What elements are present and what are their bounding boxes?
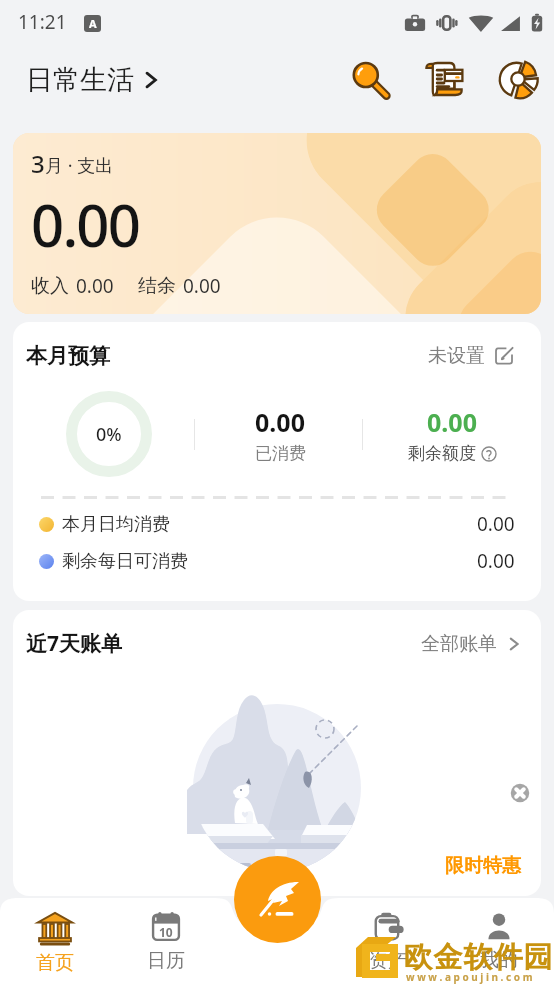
staticText: 未设置 (428, 344, 485, 368)
staticText: 11:21 (18, 9, 67, 35)
button[interactable]: Add record (234, 856, 321, 943)
staticText: 剩余额度 (408, 443, 476, 464)
button[interactable]: 资产 (332, 898, 443, 984)
button[interactable]: 未设置 (428, 344, 514, 368)
staticText: A (89, 16, 97, 31)
button[interactable]: 日常生活 (26, 63, 161, 97)
button[interactable]: Bills (419, 54, 469, 104)
staticText: 日常生活 (26, 63, 134, 97)
staticText: 我的 (480, 948, 518, 972)
staticText: 日历 (147, 949, 185, 973)
button[interactable]: Statistics (493, 54, 543, 104)
staticText: 0.00 (183, 273, 221, 299)
staticText: 0.00 (31, 185, 140, 264)
staticText: 0.00 (477, 548, 515, 574)
staticText: 剩余每日可消费 (62, 550, 188, 573)
staticText: 收入 (31, 274, 69, 298)
button[interactable]: Close (509, 782, 531, 804)
staticText: 近7天账单 (26, 629, 123, 658)
button[interactable]: 我的 (443, 898, 554, 984)
staticText: 欧金软件园 (403, 939, 553, 976)
button[interactable]: 10 (110, 898, 221, 984)
staticText: 0% (96, 422, 122, 447)
staticText: 0.00 (76, 273, 114, 299)
staticText: 0.00 (427, 405, 477, 439)
staticText: 本月日均消费 (62, 513, 170, 536)
staticText: 月 · 支出 (45, 153, 114, 178)
button[interactable]: 全部账单 (421, 632, 523, 656)
staticText: 本月预算 (26, 343, 110, 369)
staticText: w w w . a p o u j i n . c o m (406, 970, 533, 984)
staticText: 0.00 (477, 511, 515, 537)
staticText: 结余 (138, 274, 176, 298)
staticText: 限时特惠 (445, 854, 521, 878)
staticText: 3 (31, 147, 45, 180)
button[interactable]: 首页 (0, 898, 110, 984)
button[interactable]: Search (344, 54, 394, 104)
staticText: 已消费 (255, 443, 306, 464)
staticText: 0.00 (255, 405, 305, 439)
staticText: 全部账单 (421, 632, 497, 656)
staticText: 10 (159, 924, 173, 940)
staticText: 资产 (369, 949, 407, 973)
staticText: 首页 (36, 951, 74, 975)
button[interactable]: 3 (13, 133, 541, 314)
